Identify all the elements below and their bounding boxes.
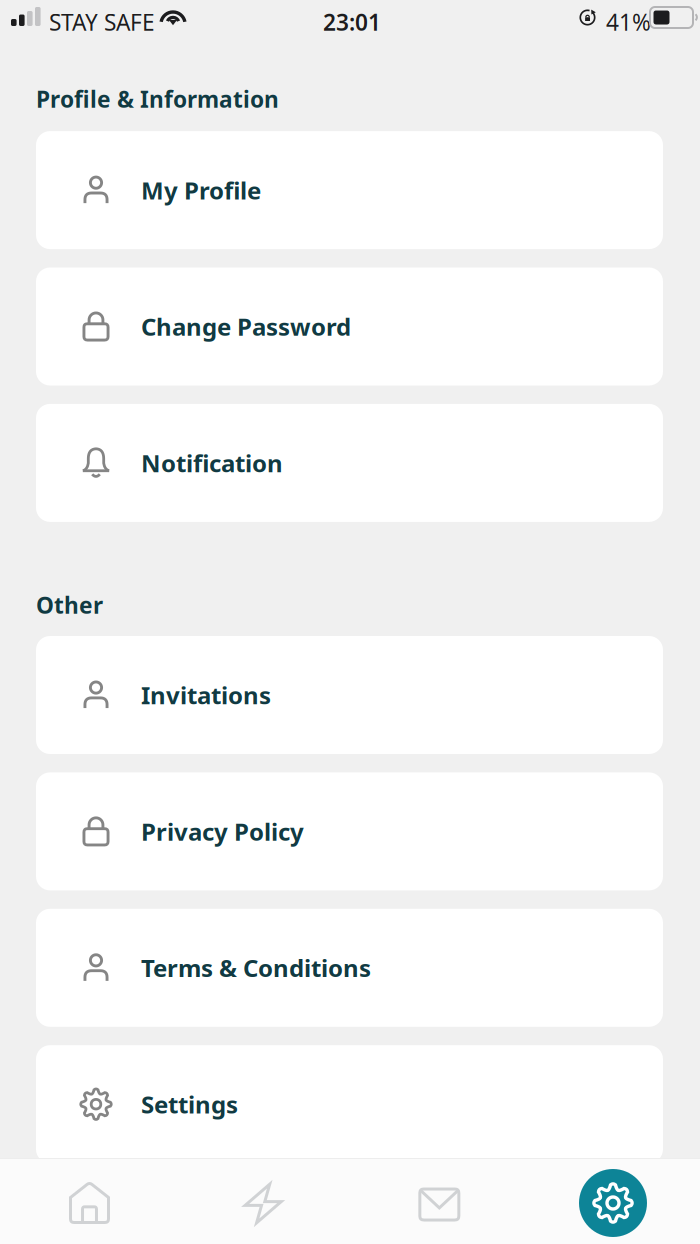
staticText: Settings <box>141 1088 238 1120</box>
staticText: Notification <box>141 447 283 479</box>
button[interactable]: Privacy Policy <box>36 772 663 890</box>
button[interactable]: Messages <box>355 1158 527 1243</box>
staticText: STAY SAFE <box>49 7 155 37</box>
staticText: Profile & Information <box>36 84 279 114</box>
button[interactable]: Activity <box>180 1158 351 1243</box>
button[interactable]: Home <box>0 1158 175 1244</box>
staticText: 41% <box>606 7 651 37</box>
staticText: Privacy Policy <box>141 815 304 847</box>
staticText: 23:01 <box>323 7 381 37</box>
button[interactable]: Settings <box>532 1158 700 1244</box>
button[interactable]: Change Password <box>36 267 663 385</box>
staticText: My Profile <box>141 174 261 206</box>
button[interactable]: Terms & Conditions <box>36 909 663 1027</box>
staticText: Change Password <box>141 311 351 342</box>
staticText: Terms & Conditions <box>141 952 371 984</box>
staticText: Other <box>36 590 103 620</box>
button[interactable]: Invitations <box>36 636 663 754</box>
staticText: Invitations <box>141 679 271 711</box>
button[interactable]: Notification <box>36 404 663 522</box>
button[interactable]: Settings <box>36 1045 663 1163</box>
button[interactable]: My Profile <box>36 131 663 249</box>
